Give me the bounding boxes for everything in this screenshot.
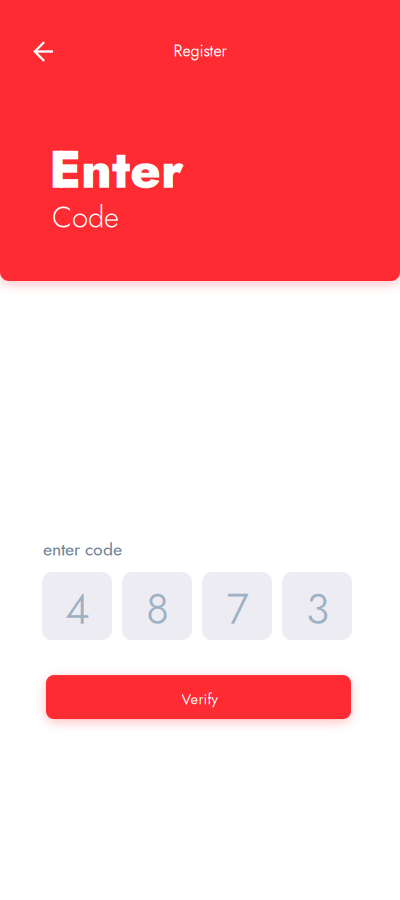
staticText: Verify xyxy=(181,688,217,710)
button[interactable]: Verify xyxy=(46,675,351,719)
staticText: Register xyxy=(173,39,226,63)
staticText: 7 xyxy=(226,578,248,640)
button[interactable]: Back xyxy=(25,33,63,71)
staticText: 3 xyxy=(306,578,329,640)
staticText: Enter xyxy=(49,132,184,207)
staticText: 4 xyxy=(65,578,90,640)
staticText: Code xyxy=(52,196,119,238)
staticText: enter code xyxy=(43,537,122,562)
staticText: 8 xyxy=(146,578,169,640)
